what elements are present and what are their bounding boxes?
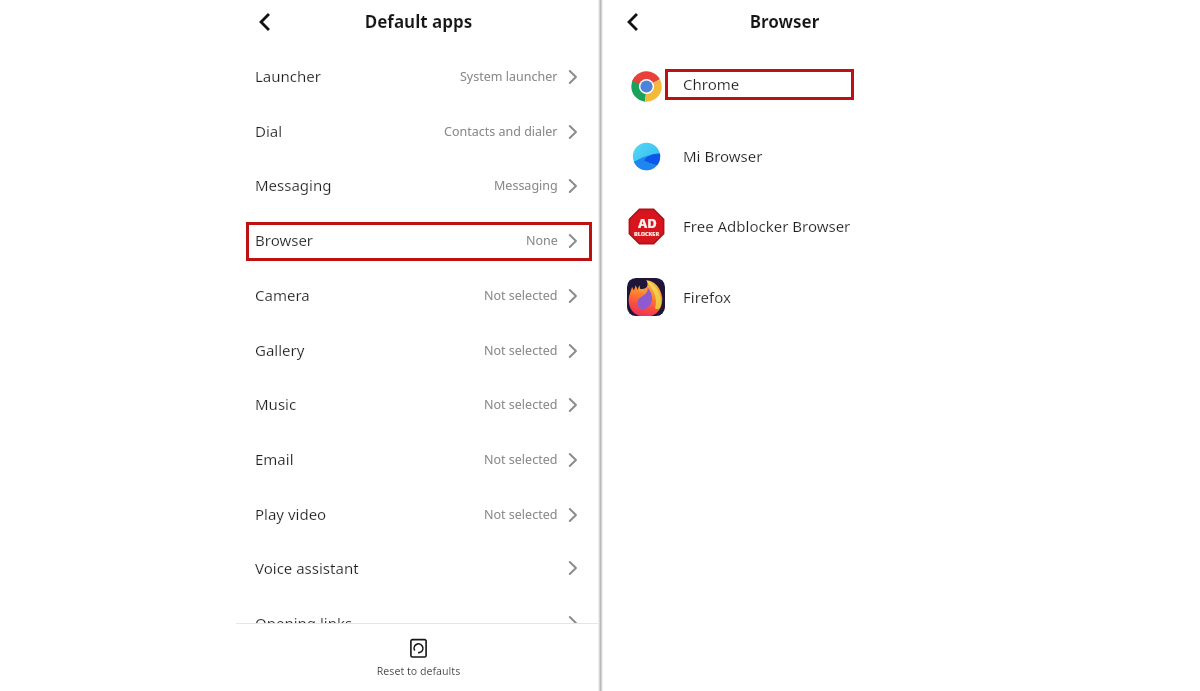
staticText: Default apps (236, 10, 601, 33)
staticText: Play video (255, 504, 327, 524)
button[interactable]: Reset to defaults (236, 624, 601, 691)
button[interactable]: Voice assistant (236, 548, 601, 588)
staticText: Voice assistant (255, 558, 359, 578)
staticText: Not selected (484, 451, 558, 468)
button[interactable]: Play video (236, 494, 601, 534)
staticText: None (526, 232, 558, 249)
button[interactable]: Firefox (602, 272, 967, 322)
button[interactable]: Opening links (236, 603, 601, 643)
staticText: System launcher (460, 68, 558, 85)
button[interactable]: Back (616, 5, 650, 39)
button[interactable]: Back (248, 5, 282, 39)
staticText: Messaging (494, 177, 558, 194)
staticText: Free Adblocker Browser (683, 216, 851, 236)
staticText: Mi Browser (683, 146, 763, 166)
staticText: BLOCKER (634, 230, 660, 237)
button[interactable]: Launcher (236, 56, 601, 96)
button[interactable]: AD (602, 201, 967, 251)
staticText: Not selected (484, 287, 558, 304)
staticText: Contacts and dialer (444, 123, 558, 140)
staticText: Messaging (255, 175, 332, 195)
staticText: AD (638, 214, 657, 232)
button[interactable]: Gallery (236, 330, 601, 370)
staticText: Email (255, 449, 294, 469)
staticText: Firefox (683, 287, 731, 307)
button[interactable]: Camera (236, 275, 601, 315)
staticText: Launcher (255, 66, 321, 86)
staticText: Music (255, 394, 297, 414)
staticText: Gallery (255, 340, 305, 360)
staticText: Browser (255, 230, 314, 250)
staticText: Chrome (683, 74, 740, 94)
staticText: Not selected (484, 342, 558, 359)
staticText: Reset to defaults (236, 664, 601, 678)
button[interactable]: Chrome (602, 59, 967, 109)
staticText: Opening links (255, 613, 353, 633)
button[interactable]: Email (236, 439, 601, 479)
button[interactable]: Music (236, 384, 601, 424)
staticText: Browser (602, 10, 967, 33)
staticText: Not selected (484, 396, 558, 413)
staticText: Dial (255, 121, 283, 141)
button[interactable]: Dial (236, 111, 601, 151)
button[interactable]: Mi Browser (602, 131, 967, 181)
staticText: Camera (255, 285, 310, 305)
staticText: Not selected (484, 506, 558, 523)
button[interactable]: Browser (236, 220, 601, 260)
button[interactable]: Messaging (236, 165, 601, 205)
